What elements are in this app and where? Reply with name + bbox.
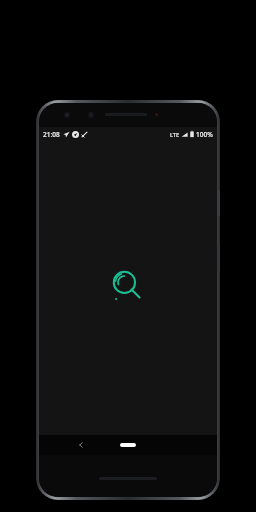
button[interactable]: Home bbox=[116, 439, 140, 451]
staticText: LTE bbox=[170, 131, 179, 138]
staticText: 100% bbox=[196, 130, 213, 139]
button[interactable]: Back bbox=[75, 439, 87, 451]
staticText: 21:08 bbox=[43, 130, 60, 139]
